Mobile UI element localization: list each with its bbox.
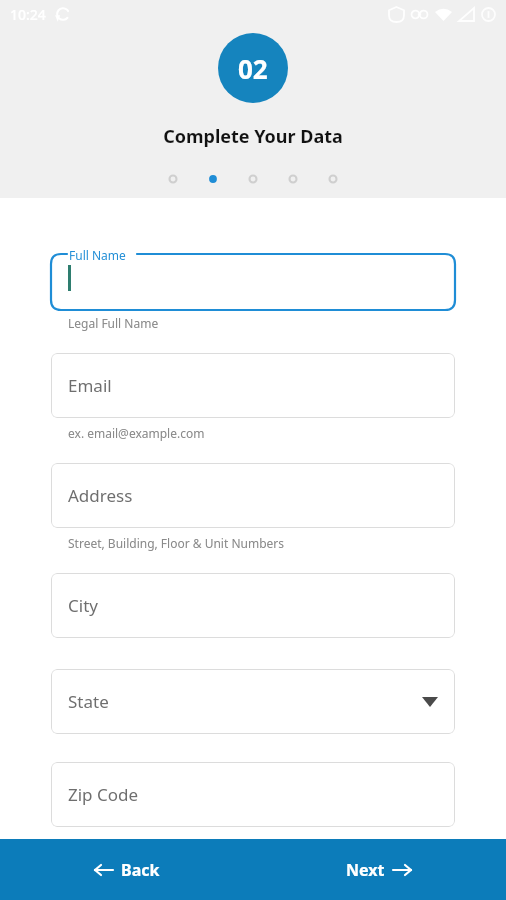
- other: Open state list: [422, 697, 438, 707]
- staticText: Complete Your Data: [163, 124, 343, 149]
- staticText: City: [68, 594, 98, 617]
- staticText: State: [68, 690, 109, 713]
- staticText: 02: [238, 51, 268, 86]
- button[interactable]: City: [51, 573, 455, 638]
- button[interactable]: Zip Code: [51, 762, 455, 827]
- staticText: Address: [68, 484, 133, 507]
- staticText: Legal Full Name: [68, 315, 159, 331]
- button[interactable]: Email: [51, 353, 455, 418]
- staticText: Email: [68, 374, 112, 397]
- staticText: Full Name: [69, 247, 126, 263]
- button[interactable]: Next: [253, 839, 506, 900]
- staticText: Back: [121, 859, 160, 881]
- button[interactable]: State: [51, 669, 455, 734]
- staticText: Zip Code: [68, 783, 139, 806]
- staticText: 10:24: [10, 5, 46, 24]
- button[interactable]: Back: [0, 839, 253, 900]
- staticText: Street, Building, Floor & Unit Numbers: [68, 535, 285, 551]
- button[interactable]: Address: [51, 463, 455, 528]
- staticText: ex. email@example.com: [68, 425, 205, 441]
- staticText: Next: [346, 859, 385, 881]
- button[interactable]: Full Name: [51, 245, 455, 310]
